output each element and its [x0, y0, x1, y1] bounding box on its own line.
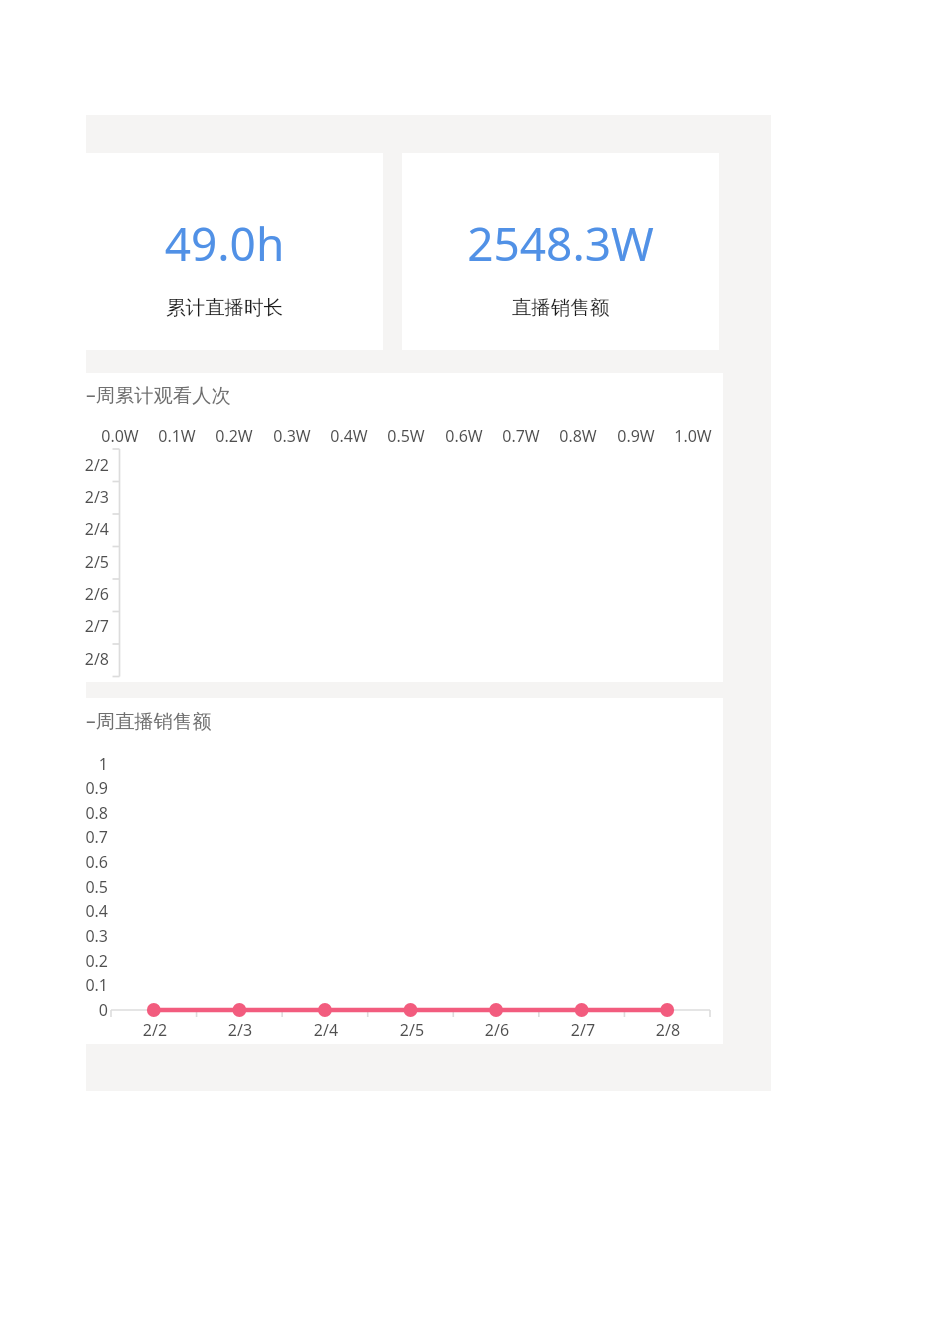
- staticText: 0.7W: [461, 425, 581, 447]
- staticText: 0.9W: [576, 425, 696, 447]
- staticText: 2/7: [543, 1019, 623, 1041]
- button[interactable]: –周直播销售额: [86, 698, 723, 1044]
- staticText: 0.9: [0, 777, 108, 799]
- staticText: 0.8W: [518, 425, 638, 447]
- staticText: 0.4: [0, 900, 108, 922]
- staticText: 0.3W: [232, 425, 352, 447]
- staticText: 0.1W: [117, 425, 237, 447]
- staticText: 2/7: [0, 615, 109, 637]
- staticText: 0.5W: [346, 425, 466, 447]
- staticText: 0.2: [0, 950, 108, 972]
- staticText: 2/5: [0, 551, 109, 573]
- staticText: –周直播销售额: [86, 707, 212, 733]
- button[interactable]: 49.0h: [86, 153, 383, 350]
- staticText: 直播销售额: [402, 295, 719, 320]
- other: Daily sales line chart: [100, 990, 730, 1030]
- staticText: 0.7: [0, 826, 108, 848]
- staticText: 2548.3W: [402, 212, 719, 275]
- staticText: 0: [0, 999, 108, 1021]
- staticText: 2/4: [286, 1019, 366, 1041]
- staticText: 0.4W: [289, 425, 409, 447]
- staticText: 0.3: [0, 925, 108, 947]
- staticText: 2/6: [0, 583, 109, 605]
- staticText: 2/4: [0, 518, 109, 540]
- staticText: 0.1: [0, 974, 108, 996]
- staticText: 0.6W: [404, 425, 524, 447]
- staticText: 0.0W: [60, 425, 180, 447]
- staticText: 累计直播时长: [86, 295, 363, 320]
- button[interactable]: 2548.3W: [402, 153, 719, 350]
- staticText: 2/6: [457, 1019, 537, 1041]
- staticText: 0.5: [0, 876, 108, 898]
- staticText: 2/5: [372, 1019, 452, 1041]
- staticText: 2/8: [628, 1019, 708, 1041]
- staticText: 2/2: [115, 1019, 195, 1041]
- staticText: 2/3: [0, 486, 109, 508]
- staticText: 0.2W: [174, 425, 294, 447]
- staticText: 49.0h: [86, 212, 363, 275]
- staticText: 0.6: [0, 851, 108, 873]
- staticText: 1: [0, 753, 108, 775]
- button[interactable]: –周累计观看人次: [86, 373, 723, 682]
- staticText: 2/3: [200, 1019, 280, 1041]
- staticText: 2/8: [0, 648, 109, 670]
- staticText: –周累计观看人次: [86, 381, 231, 407]
- staticText: 2/2: [0, 454, 109, 476]
- staticText: 0.8: [0, 802, 108, 824]
- staticText: 1.0W: [633, 425, 753, 447]
